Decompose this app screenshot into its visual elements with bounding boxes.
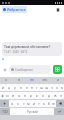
staticText: и: [57, 78, 59, 82]
staticText: а: [18, 94, 20, 98]
staticText: ы: [6, 94, 9, 98]
staticText: э: [60, 94, 62, 98]
button[interactable]: Delete: [54, 6, 62, 14]
button[interactable]: т: [36, 100, 41, 107]
button[interactable]: б: [46, 100, 51, 107]
button[interactable]: что: [38, 77, 51, 83]
staticText: в: [12, 94, 14, 98]
button[interactable]: ф: [0, 92, 5, 99]
button[interactable]: у: [12, 84, 18, 91]
button[interactable]: я: [9, 100, 15, 107]
staticText: 13:41 · 2020 · 04:12: [4, 50, 28, 54]
staticText: ю: [52, 102, 55, 106]
button[interactable]: ъ: [59, 84, 64, 91]
button[interactable]: Избранное: [2, 6, 27, 13]
button[interactable]: Там держимый обстановке?: [2, 42, 62, 56]
button[interactable]: ч: [15, 100, 21, 107]
staticText: я: [5, 78, 7, 82]
staticText: что: [42, 78, 47, 82]
staticText: п: [24, 94, 26, 98]
button[interactable]: д: [46, 92, 52, 99]
staticText: ,: [13, 110, 14, 114]
staticText: Там держимый обстановке?: [4, 44, 51, 49]
staticText: .: [51, 110, 52, 114]
button[interactable]: ь: [41, 100, 46, 107]
staticText: д: [48, 94, 50, 98]
staticText: н: [31, 86, 33, 90]
button[interactable]: .: [48, 108, 54, 115]
staticText: ?123: [2, 110, 8, 114]
button[interactable]: в: [12, 77, 25, 83]
button[interactable]: м: [26, 100, 31, 107]
button[interactable]: е: [24, 84, 29, 91]
staticText: х: [56, 86, 58, 90]
staticText: Сообщение: [15, 68, 34, 72]
button[interactable]: п: [22, 92, 28, 99]
button[interactable]: к: [18, 84, 24, 91]
button[interactable]: Shift: [0, 100, 9, 107]
button[interactable]: не: [25, 77, 38, 83]
button[interactable]: Send: [53, 65, 62, 74]
staticText: я: [11, 102, 13, 106]
staticText: г: [36, 86, 38, 90]
staticText: Русский: [27, 110, 38, 114]
button[interactable]: г: [34, 84, 39, 91]
button[interactable]: й: [0, 84, 6, 91]
button[interactable]: Backspace: [56, 100, 64, 107]
staticText: ь: [43, 102, 45, 106]
button[interactable]: я: [0, 77, 12, 83]
staticText: к: [20, 86, 22, 90]
button[interactable]: с: [21, 100, 26, 107]
staticText: ж: [54, 94, 57, 98]
button[interactable]: и: [31, 100, 36, 107]
button[interactable]: х: [54, 84, 59, 91]
button[interactable]: з: [49, 84, 54, 91]
button[interactable]: ,: [10, 108, 16, 115]
staticText: б: [48, 102, 50, 106]
staticText: т: [38, 102, 40, 106]
button[interactable]: о: [34, 92, 40, 99]
staticText: у: [14, 86, 16, 90]
staticText: ф: [1, 94, 4, 98]
button[interactable]: а: [16, 92, 22, 99]
button[interactable]: ж: [52, 92, 58, 99]
staticText: с: [23, 102, 25, 106]
button[interactable]: н: [29, 84, 34, 91]
staticText: ц: [8, 86, 10, 90]
staticText: з: [51, 86, 53, 90]
button[interactable]: ы: [5, 92, 10, 99]
button[interactable]: э: [58, 92, 64, 99]
staticText: не: [30, 78, 34, 82]
button[interactable]: л: [40, 92, 46, 99]
button[interactable]: Сообщение: [9, 65, 51, 74]
staticText: ш: [40, 86, 43, 90]
staticText: л: [42, 94, 44, 98]
button[interactable]: Enter: [54, 108, 64, 115]
staticText: ч: [17, 102, 19, 106]
button[interactable]: щ: [44, 84, 49, 91]
button[interactable]: р: [28, 92, 34, 99]
button[interactable]: Attach: [2, 67, 8, 73]
staticText: р: [30, 94, 32, 98]
staticText: Избранное: [7, 7, 26, 12]
button[interactable]: ю: [51, 100, 56, 107]
staticText: ъ: [61, 86, 63, 90]
button[interactable]: ц: [6, 84, 12, 91]
button[interactable]: ?123: [0, 108, 10, 115]
staticText: о: [36, 94, 38, 98]
staticText: и: [33, 102, 35, 106]
button[interactable]: Русский: [16, 108, 48, 115]
staticText: щ: [45, 86, 48, 90]
staticText: е: [26, 86, 28, 90]
staticText: й: [2, 86, 4, 90]
button[interactable]: и: [51, 77, 64, 83]
button[interactable]: ш: [39, 84, 44, 91]
button[interactable]: в: [10, 92, 16, 99]
staticText: м: [27, 102, 30, 106]
staticText: в: [18, 78, 20, 82]
